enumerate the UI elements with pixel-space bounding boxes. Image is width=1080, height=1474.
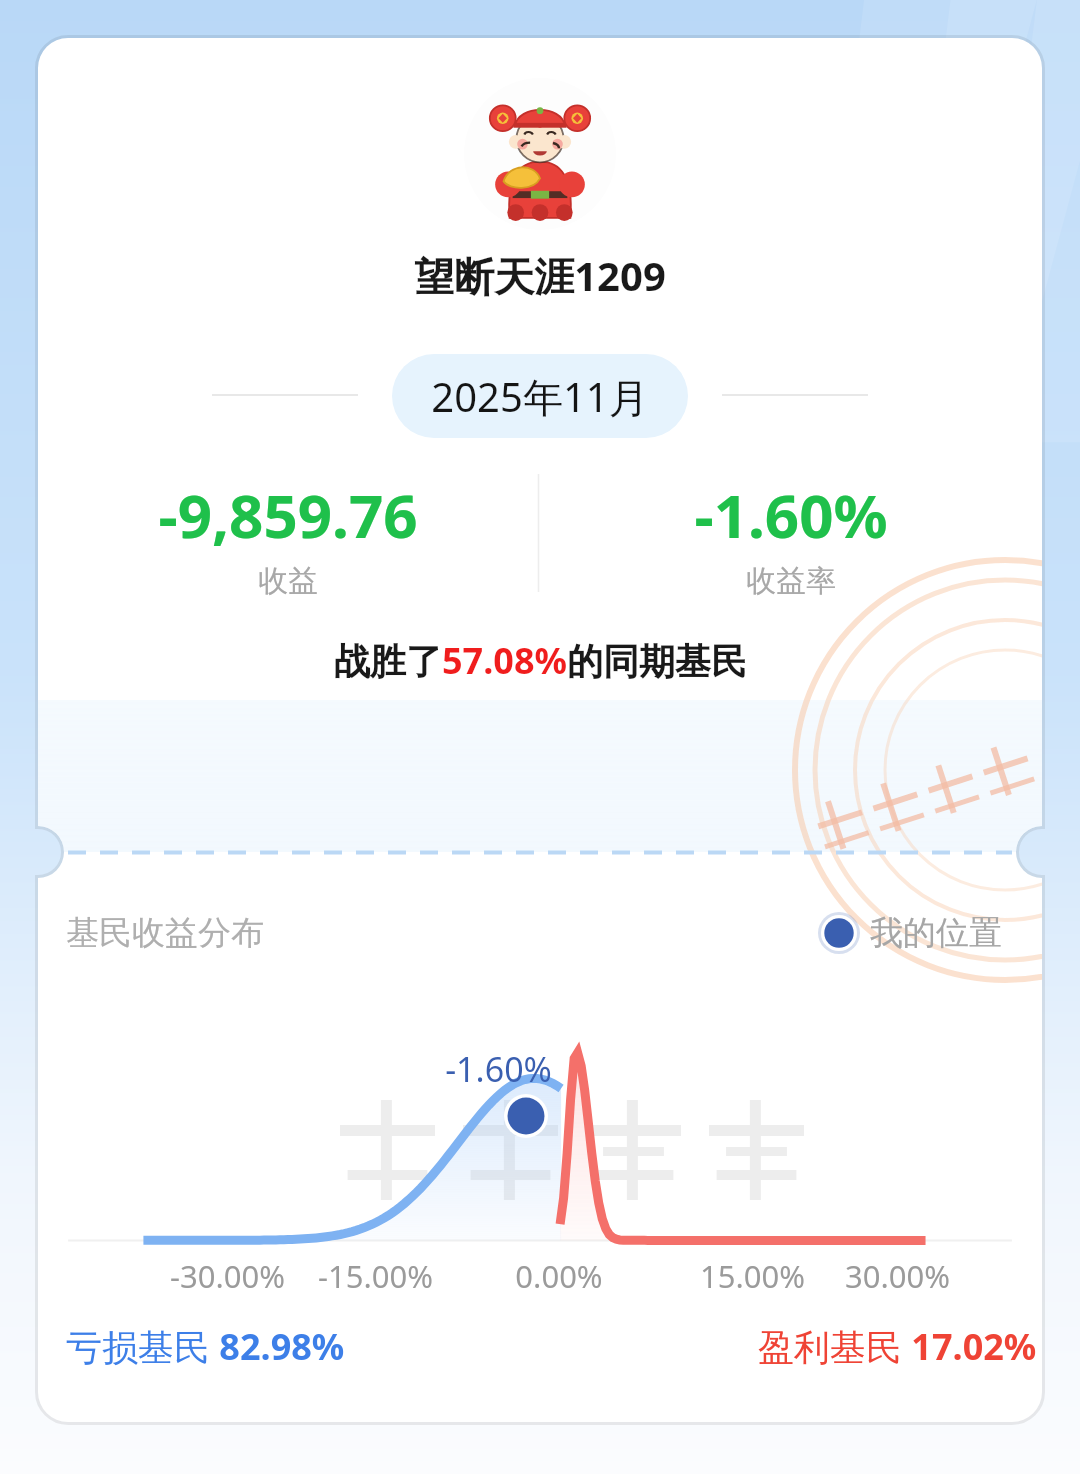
staticText: 收益率 bbox=[746, 562, 836, 600]
staticText: 基民收益分布 bbox=[66, 912, 264, 954]
staticText: 15.00% bbox=[700, 1255, 805, 1297]
staticText: -30.00% bbox=[170, 1255, 285, 1297]
button[interactable]: 亏损基民 82.98% bbox=[66, 1322, 345, 1371]
button[interactable]: -9,859.76 bbox=[38, 474, 538, 600]
button[interactable]: 2025年11月 bbox=[392, 354, 688, 438]
staticText: 我的位置 bbox=[870, 912, 1002, 954]
button[interactable]: 我的位置 bbox=[818, 912, 1002, 954]
staticText: -15.00% bbox=[318, 1255, 433, 1297]
button[interactable]: 基民收益分布 bbox=[66, 912, 264, 954]
staticText: 盈利基民 17.02% bbox=[758, 1322, 1037, 1371]
staticText: 战胜了57.08%的同期基民 bbox=[334, 636, 747, 685]
button[interactable]: 战胜了57.08%的同期基民 bbox=[0, 630, 1080, 690]
button[interactable]: 盈利基民 17.02% bbox=[758, 1322, 1037, 1371]
staticText: 30.00% bbox=[845, 1255, 950, 1297]
staticText: -1.60% bbox=[694, 474, 888, 556]
staticText: 望断天涯1209 bbox=[414, 248, 666, 303]
staticText: -9,859.76 bbox=[158, 474, 418, 556]
staticText: 亏损基民 82.98% bbox=[66, 1322, 345, 1371]
staticText: 2025年11月 bbox=[431, 369, 649, 424]
button[interactable]: 用户头像 bbox=[464, 78, 616, 230]
staticText: -1.60% bbox=[445, 1046, 552, 1092]
staticText: 收益 bbox=[258, 562, 318, 600]
button[interactable]: -1.60% bbox=[540, 474, 1042, 600]
staticText: 0.00% bbox=[515, 1255, 603, 1297]
button[interactable]: 望断天涯1209 bbox=[0, 248, 1080, 303]
